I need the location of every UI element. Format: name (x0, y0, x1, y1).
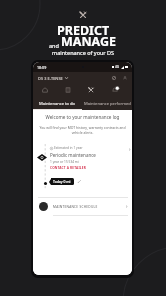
button[interactable]: Notifications (103, 84, 127, 96)
staticText: Welcome to your maintenance log (33, 114, 132, 120)
button[interactable]: CONTACT A RETAILER (50, 166, 86, 170)
button[interactable]: Assistance (110, 74, 118, 82)
staticText: DS 3 E-TENSE (38, 76, 63, 81)
staticText: Maintenance performed (84, 101, 131, 107)
staticText: PREDICT (57, 22, 110, 39)
staticText: and (49, 42, 61, 49)
staticText: MAINTENANCE SCHEDULE (53, 205, 98, 209)
staticText: 4G (115, 65, 120, 69)
button[interactable]: Profile (121, 74, 129, 82)
staticText: 1 year or 15 534 mi (50, 160, 79, 164)
staticText: maintenance of your DS (52, 49, 115, 56)
button[interactable]: Home (33, 84, 56, 96)
button[interactable]: Maintenance (79, 84, 103, 96)
staticText: › (126, 203, 128, 210)
staticText: Estimated in 1 year (54, 146, 83, 150)
button[interactable]: MAINTENANCE SCHEDULE (33, 198, 132, 215)
staticText: You will find your MOT history, warranty… (33, 125, 132, 135)
button[interactable]: Maintenance performed (82, 96, 132, 110)
button[interactable]: Maintenance to do (33, 96, 82, 110)
staticText: › (129, 146, 131, 153)
staticText: Periodic maintenance (50, 152, 96, 158)
button[interactable]: Documents (56, 84, 79, 96)
staticText: MANAGE (61, 33, 117, 50)
staticText: Today 0 mi (53, 179, 71, 184)
staticText: Maintenance to do (39, 101, 76, 107)
staticText: 18:09 (37, 65, 47, 70)
